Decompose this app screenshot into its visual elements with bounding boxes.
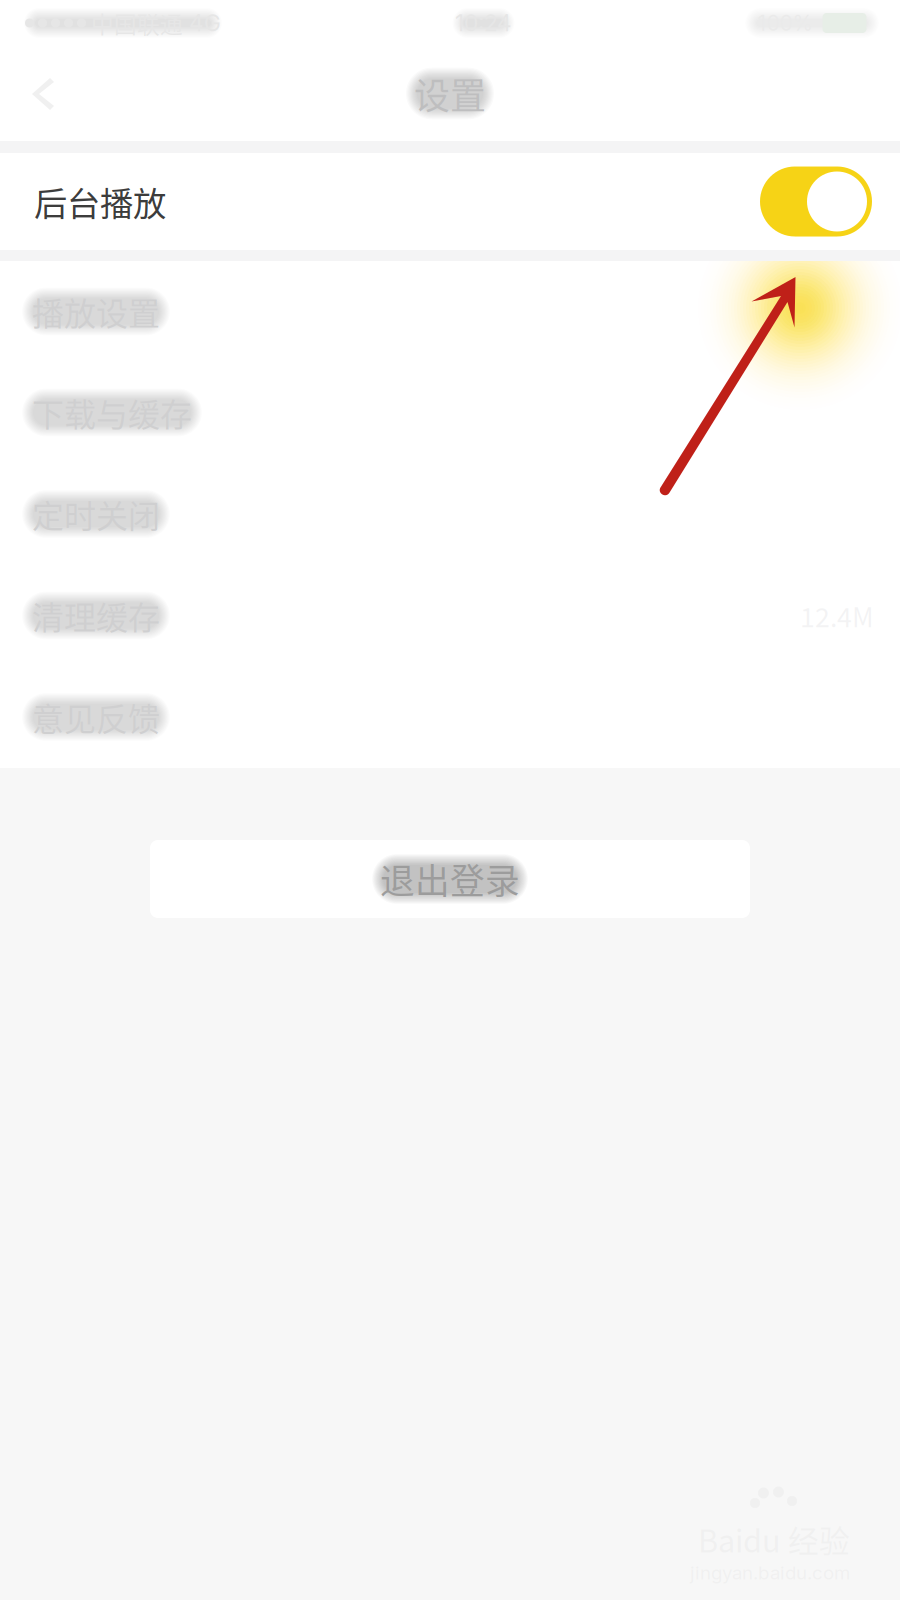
staticText: 下载与缓存	[32, 389, 192, 436]
staticText: 意见反馈	[32, 694, 160, 740]
staticText: 设置	[414, 67, 486, 119]
staticText: 4G	[183, 9, 221, 37]
staticText: 退出登录	[380, 854, 520, 904]
button[interactable]: 意见反馈	[0, 666, 900, 768]
button[interactable]: 播放设置	[0, 261, 900, 362]
staticText: 定时关闭	[32, 491, 160, 537]
staticText: 播放设置	[32, 288, 160, 335]
staticText: 清理缓存	[32, 592, 160, 639]
button[interactable]: 清理缓存	[0, 565, 900, 666]
button[interactable]: 定时关闭	[0, 463, 900, 565]
button[interactable]: 退出登录	[150, 840, 750, 918]
staticText: 12.4M	[800, 596, 874, 635]
staticText: 10:24	[455, 9, 512, 37]
staticText: 100%	[757, 10, 813, 36]
staticText: 中国联通	[86, 7, 183, 39]
button[interactable]: 下载与缓存	[0, 362, 900, 463]
button[interactable]: 后台播放	[0, 153, 900, 250]
staticText: 后台播放	[34, 177, 166, 226]
